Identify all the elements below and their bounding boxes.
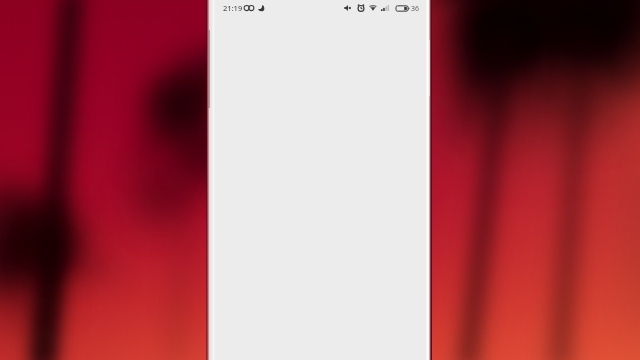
staticText: 36 — [411, 4, 420, 14]
staticText: 21:19 — [223, 3, 243, 13]
